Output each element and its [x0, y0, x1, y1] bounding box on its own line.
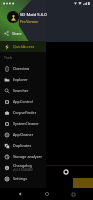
staticText: Searcher	[13, 88, 29, 93]
staticText: Settings	[13, 176, 28, 181]
staticText: QuickAccess	[13, 44, 35, 49]
staticText: Tools	[4, 55, 13, 60]
staticText: Duplicates	[13, 143, 32, 148]
button[interactable]: Overview	[0, 63, 46, 74]
button[interactable]: Back	[14, 188, 26, 200]
button[interactable]: Changelog	[0, 162, 46, 173]
button[interactable]: Home	[41, 188, 53, 200]
staticText: Overview	[13, 66, 30, 71]
staticText: AppCleaner	[13, 132, 34, 137]
button[interactable]: Explorer	[0, 74, 46, 85]
staticText: v5.6.0 (5040480)	[13, 168, 33, 172]
button[interactable]: AppControl	[0, 96, 46, 107]
staticText: Share	[12, 31, 22, 36]
staticText: SystemCleaner	[13, 121, 39, 126]
staticText: Storage analyzer	[13, 154, 42, 159]
button[interactable]: Recent apps	[67, 188, 79, 200]
staticText: SD Maid 5.6.0	[20, 12, 47, 18]
button[interactable]: CorpseFinder	[0, 107, 46, 118]
staticText: AppControl	[13, 99, 33, 104]
button[interactable]: Duplicates	[0, 140, 46, 151]
staticText: CorpseFinder	[13, 110, 37, 115]
button[interactable]: AppCleaner	[0, 129, 46, 140]
button[interactable]: Settings	[0, 173, 46, 184]
button[interactable]: SystemCleaner	[0, 118, 46, 129]
staticText: Pro Version	[20, 19, 39, 24]
staticText: Explorer	[13, 77, 28, 82]
button[interactable]: Storage analyzer	[0, 151, 46, 162]
staticText: Changelog	[13, 163, 32, 168]
button[interactable]: QuickAccess	[0, 41, 46, 52]
button[interactable]: Share	[0, 28, 46, 38]
button[interactable]: Searcher	[0, 85, 46, 96]
